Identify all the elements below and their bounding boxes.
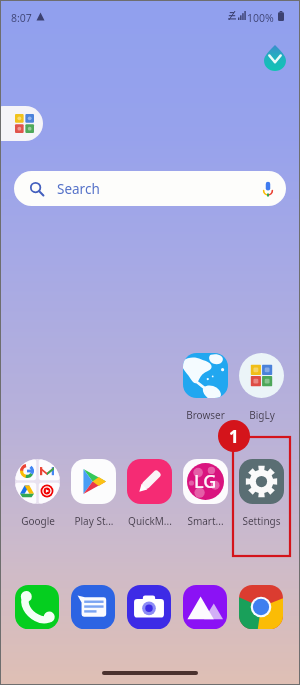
staticText: BigLy [249, 408, 275, 422]
button[interactable]: Browser [177, 351, 233, 427]
staticText: Google [21, 514, 55, 528]
staticText: Browser [186, 408, 225, 422]
button[interactable]: Chrome [239, 585, 283, 629]
staticText: 1 [229, 425, 239, 448]
button[interactable]: QuickM... [121, 457, 177, 533]
button[interactable]: LG [177, 457, 233, 533]
button[interactable]: Camera [127, 585, 171, 629]
button[interactable]: Google [9, 457, 65, 533]
staticText: Settings [242, 514, 281, 528]
button[interactable]: Search [14, 171, 286, 206]
staticText: QuickM... [128, 514, 172, 528]
staticText: 8:07 [11, 11, 32, 25]
button[interactable]: Gallery [183, 585, 227, 629]
button[interactable]: Phone [15, 585, 59, 629]
staticText: LG [194, 469, 217, 494]
staticText: Smart... [187, 514, 224, 528]
button[interactable]: Play St... [65, 457, 121, 533]
button[interactable]: App shortcuts widget [0, 106, 43, 141]
button[interactable]: Weather [264, 45, 286, 71]
staticText: Search [57, 180, 100, 198]
button[interactable]: Home [102, 671, 198, 675]
button[interactable]: Settings [233, 457, 289, 533]
staticText: Play St... [74, 514, 114, 528]
button[interactable]: BigLy [233, 351, 289, 427]
button[interactable]: Messages [71, 585, 115, 629]
staticText: 100% [247, 11, 274, 25]
